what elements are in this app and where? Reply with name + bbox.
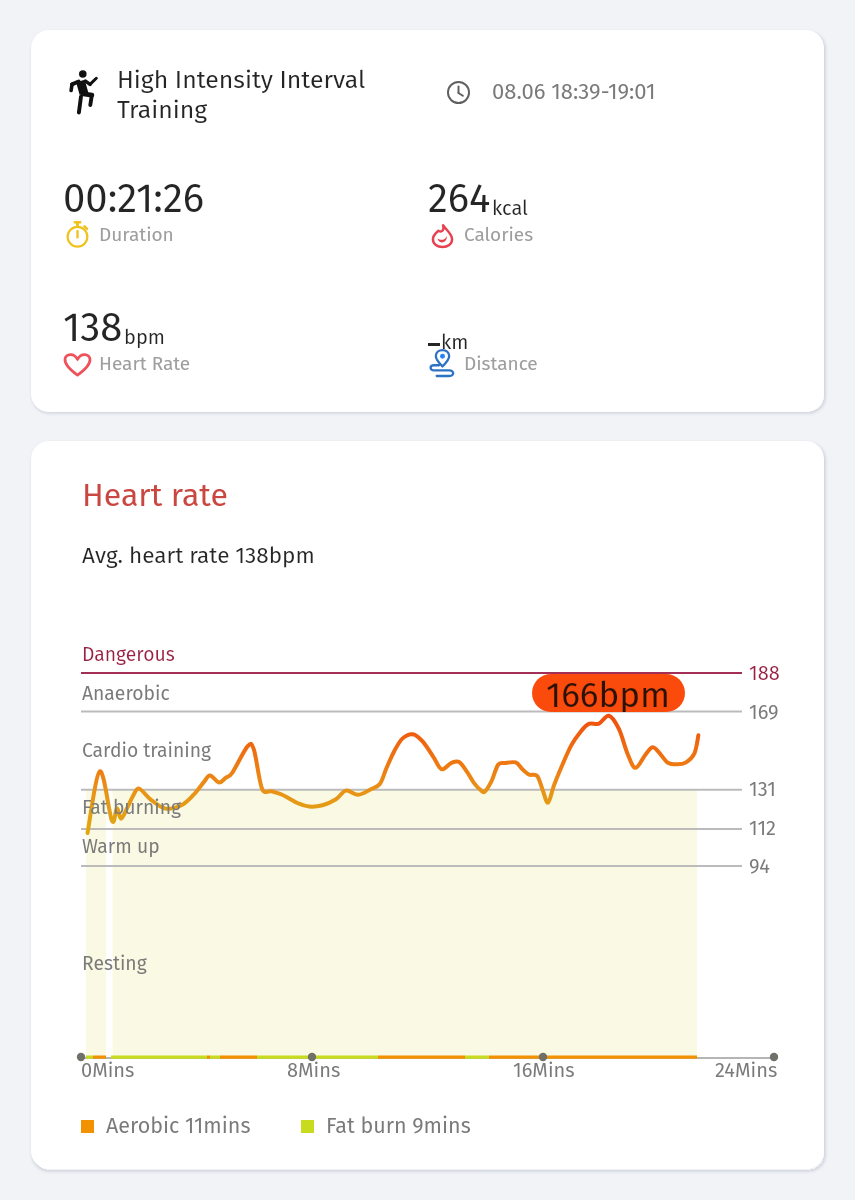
staticText: 264 bbox=[428, 175, 491, 223]
staticText: Distance bbox=[464, 352, 538, 375]
staticText: 00:21:26 bbox=[63, 175, 205, 223]
staticText: 16Mins bbox=[513, 1058, 575, 1082]
staticText: Duration bbox=[99, 223, 174, 246]
button[interactable]: Heart rate bbox=[31, 441, 824, 1169]
staticText: 188 bbox=[749, 661, 780, 685]
staticText: Warm up bbox=[82, 835, 160, 858]
staticText: Resting bbox=[82, 952, 147, 975]
staticText: 138 bbox=[63, 304, 123, 352]
staticText: Avg. heart rate 138bpm bbox=[82, 542, 315, 569]
staticText: 08.06 18:39-19:01 bbox=[492, 78, 656, 104]
staticText: 112 bbox=[749, 816, 776, 840]
staticText: 8Mins bbox=[287, 1058, 341, 1082]
staticText: km bbox=[441, 330, 469, 354]
staticText: Cardio training bbox=[82, 739, 212, 762]
staticText: Fat burning bbox=[82, 796, 182, 819]
button[interactable]: Workout type bbox=[31, 30, 824, 412]
other: Workout type bbox=[69, 67, 99, 114]
staticText: Heart Rate bbox=[99, 352, 191, 375]
button[interactable]: 166bpm bbox=[532, 674, 685, 712]
staticText: 166bpm bbox=[546, 674, 671, 712]
staticText: kcal bbox=[492, 196, 528, 220]
staticText: 0Mins bbox=[81, 1058, 135, 1082]
staticText: 169 bbox=[749, 700, 779, 724]
staticText: 131 bbox=[749, 777, 776, 801]
staticText: Calories bbox=[464, 223, 534, 246]
staticText: Fat burn 9mins bbox=[326, 1113, 471, 1139]
staticText: Aerobic 11mins bbox=[106, 1113, 251, 1139]
staticText: bpm bbox=[124, 325, 165, 349]
staticText: 24Mins bbox=[715, 1058, 778, 1082]
staticText: Heart rate bbox=[82, 476, 228, 514]
staticText: Dangerous bbox=[82, 643, 175, 666]
other: Time range bbox=[447, 81, 470, 104]
staticText: High Intensity Interval Training bbox=[117, 65, 366, 125]
staticText: 94 bbox=[749, 854, 770, 878]
staticText: Anaerobic bbox=[82, 682, 170, 705]
